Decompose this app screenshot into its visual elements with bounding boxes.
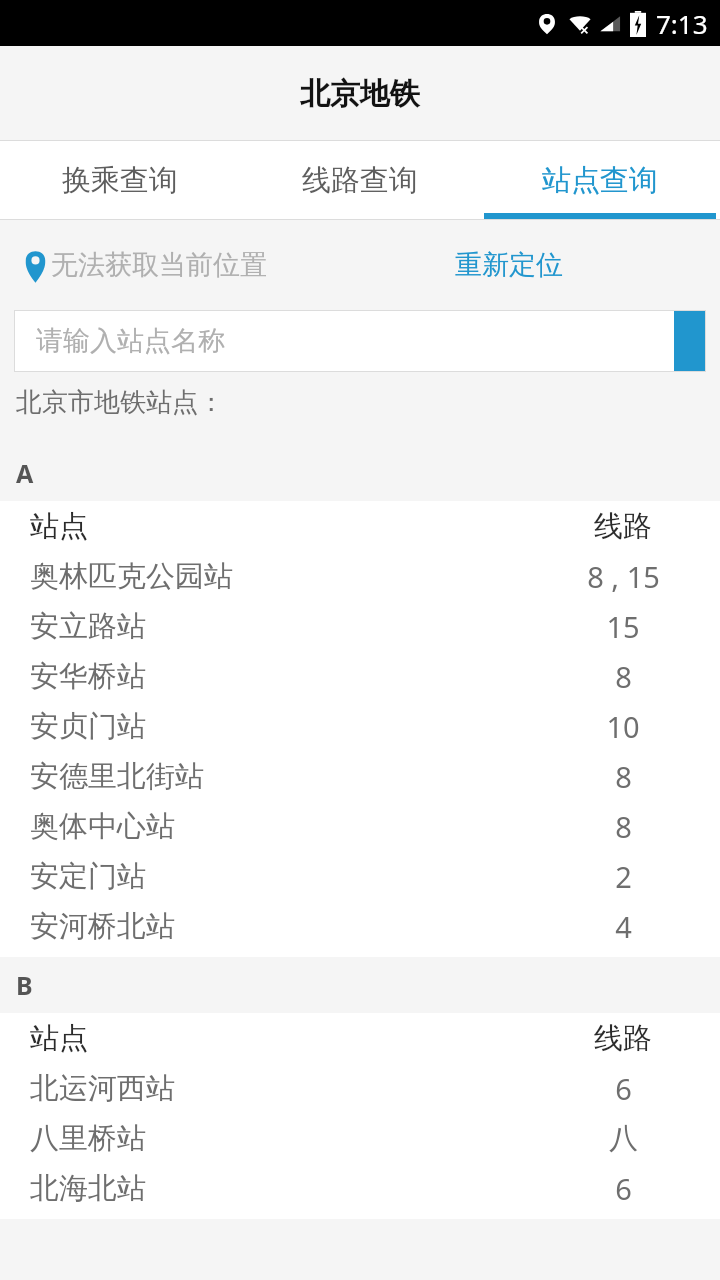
button[interactable]: 八里桥站	[0, 1113, 720, 1163]
staticText: 线路	[594, 1020, 652, 1057]
staticText: 请输入站点名称	[36, 324, 225, 358]
staticText: 安立路站	[30, 608, 548, 645]
button[interactable]: 无法获取当前位置	[22, 246, 267, 284]
staticText: 无法获取当前位置	[51, 248, 267, 282]
button[interactable]: 北运河西站	[0, 1063, 720, 1113]
staticText: 安华桥站	[30, 658, 548, 695]
staticText: 北京地铁	[300, 75, 420, 113]
button[interactable]: 换乘查询	[0, 141, 240, 219]
button[interactable]: 奥体中心站	[0, 801, 720, 851]
button[interactable]: 站点	[0, 1013, 720, 1063]
button[interactable]: 线路查询	[240, 141, 480, 219]
button[interactable]: 请输入站点名称	[14, 310, 674, 372]
staticText: 8	[615, 807, 632, 846]
staticText: 10	[606, 707, 640, 746]
staticText: 6	[615, 1069, 632, 1108]
staticText: 八	[609, 1120, 638, 1157]
button[interactable]: 安德里北街站	[0, 751, 720, 801]
button[interactable]: 安河桥北站	[0, 901, 720, 951]
staticText: 6	[615, 1169, 632, 1208]
button[interactable]: 奥林匹克公园站	[0, 551, 720, 601]
button[interactable]: 站点	[0, 501, 720, 551]
staticText: 重新定位	[455, 248, 563, 282]
staticText: 4	[615, 907, 632, 946]
staticText: 线路	[594, 508, 652, 545]
button[interactable]: 站点查询	[480, 141, 720, 219]
button[interactable]: 安立路站	[0, 601, 720, 651]
staticText: 线路查询	[302, 162, 418, 199]
button[interactable]: 安华桥站	[0, 651, 720, 701]
staticText: 安河桥北站	[30, 908, 548, 945]
button[interactable]: 安贞门站	[0, 701, 720, 751]
staticText: 站点查询	[542, 162, 658, 199]
staticText: 安贞门站	[30, 708, 548, 745]
staticText: 奥林匹克公园站	[30, 558, 548, 595]
staticText: 北海北站	[30, 1170, 548, 1207]
staticText: 7:13	[656, 6, 708, 41]
staticText: 15	[606, 607, 640, 646]
button[interactable]: 北海北站	[0, 1163, 720, 1213]
staticText: B	[16, 968, 33, 1002]
staticText: 北京市地铁站点：	[16, 386, 224, 419]
staticText: 2	[615, 857, 632, 896]
staticText: 八里桥站	[30, 1120, 548, 1157]
staticText: 安定门站	[30, 858, 548, 895]
staticText: A	[16, 456, 34, 490]
staticText: 安德里北街站	[30, 758, 548, 795]
button[interactable]: 重新定位	[455, 248, 563, 282]
staticText: 换乘查询	[62, 162, 178, 199]
staticText: 8 , 15	[587, 557, 660, 596]
staticText: 8	[615, 757, 632, 796]
staticText: 奥体中心站	[30, 808, 548, 845]
button[interactable]: 搜索	[674, 310, 706, 372]
staticText: 8	[615, 657, 632, 696]
staticText: 站点	[30, 508, 548, 545]
staticText: 北运河西站	[30, 1070, 548, 1107]
staticText: 站点	[30, 1020, 548, 1057]
button[interactable]: 安定门站	[0, 851, 720, 901]
